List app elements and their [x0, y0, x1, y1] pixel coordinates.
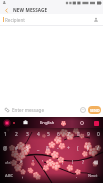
button[interactable]: 7 [63, 128, 73, 141]
button[interactable]: SEND [88, 106, 101, 114]
button[interactable]: 4 [33, 128, 43, 141]
button[interactable]: Backspace [88, 155, 103, 169]
button[interactable]: Badge [11, 120, 17, 126]
staticText: ABC [5, 173, 14, 179]
button[interactable]: @ [0, 141, 11, 155]
staticText: 3 [26, 131, 29, 138]
staticText: 6 [57, 131, 60, 138]
staticText: English [40, 120, 55, 126]
staticText: : [52, 159, 54, 166]
button[interactable]: ' [38, 155, 48, 169]
staticText: ' [42, 159, 44, 166]
staticText: - [57, 145, 59, 152]
button[interactable]: , [18, 169, 28, 183]
button[interactable]: Choose contacts [90, 14, 101, 25]
staticText: 5 [47, 131, 50, 138]
staticText: ; [62, 159, 64, 166]
button[interactable]: . [72, 169, 82, 183]
staticText: ( [77, 145, 79, 152]
staticText: NEW MESSAGE [13, 7, 48, 13]
button[interactable]: 8 [73, 128, 83, 141]
staticText: , [22, 173, 24, 180]
button[interactable]: Settings [78, 119, 86, 127]
button[interactable]: & [43, 141, 53, 155]
staticText: 1 [4, 131, 7, 138]
button[interactable]: 1 [0, 128, 11, 141]
button[interactable]: ; [58, 155, 68, 169]
staticText: + [67, 145, 70, 152]
button[interactable]: Theme [2, 118, 11, 127]
staticText: Recipient [5, 17, 25, 23]
staticText: " [32, 159, 34, 166]
button[interactable]: Emoji [77, 104, 88, 115]
button[interactable]: / [93, 141, 103, 155]
staticText: # [15, 145, 19, 152]
button[interactable]: Next [82, 169, 103, 183]
staticText: 7 [67, 131, 70, 138]
staticText: Enter message [12, 107, 45, 113]
staticText: ) [87, 145, 89, 152]
button[interactable]: ABC [0, 169, 18, 183]
staticText: _ [37, 145, 40, 152]
button[interactable]: ( [73, 141, 83, 155]
button[interactable]: 9 [83, 128, 93, 141]
staticText: Next [88, 173, 98, 179]
staticText: & [46, 145, 50, 152]
staticText: 2 [15, 131, 18, 138]
button[interactable]: - [53, 141, 63, 155]
button[interactable]: 2 [11, 128, 22, 141]
staticText: @ [3, 145, 8, 152]
staticText: / [97, 145, 99, 152]
button[interactable]: + [63, 141, 73, 155]
button[interactable]: ! [68, 155, 78, 169]
staticText: 9 [87, 131, 90, 138]
button[interactable]: ) [83, 141, 93, 155]
button[interactable]: Recipient [0, 14, 103, 25]
staticText: . [76, 173, 78, 180]
staticText: =\< [5, 160, 11, 165]
staticText: ! [72, 159, 74, 166]
button[interactable]: _ [33, 141, 43, 155]
button[interactable]: 3 [22, 128, 33, 141]
button[interactable]: # [11, 141, 22, 155]
button[interactable]: 5 [43, 128, 53, 141]
button[interactable]: ? [78, 155, 88, 169]
button[interactable]: Clipboard [21, 118, 30, 127]
button[interactable]: Sticker [59, 119, 67, 127]
staticText: 4 [37, 131, 40, 138]
button[interactable]: 0 [93, 128, 103, 141]
staticText: $ [26, 145, 29, 152]
button[interactable]: $ [22, 141, 33, 155]
staticText: 0 [97, 131, 100, 138]
staticText: ? [82, 159, 85, 166]
button[interactable]: Space [28, 169, 72, 183]
staticText: SEND [90, 108, 100, 113]
button[interactable]: =\< [0, 155, 16, 169]
button[interactable]: Close keyboard [92, 119, 100, 127]
button[interactable]: * [16, 155, 27, 169]
button[interactable]: 6 [53, 128, 63, 141]
button[interactable]: " [27, 155, 38, 169]
button[interactable]: Back [0, 6, 13, 14]
staticText: 8 [77, 131, 80, 138]
button[interactable]: : [48, 155, 58, 169]
staticText: * [20, 159, 23, 166]
button[interactable]: Attach file [1, 104, 12, 115]
